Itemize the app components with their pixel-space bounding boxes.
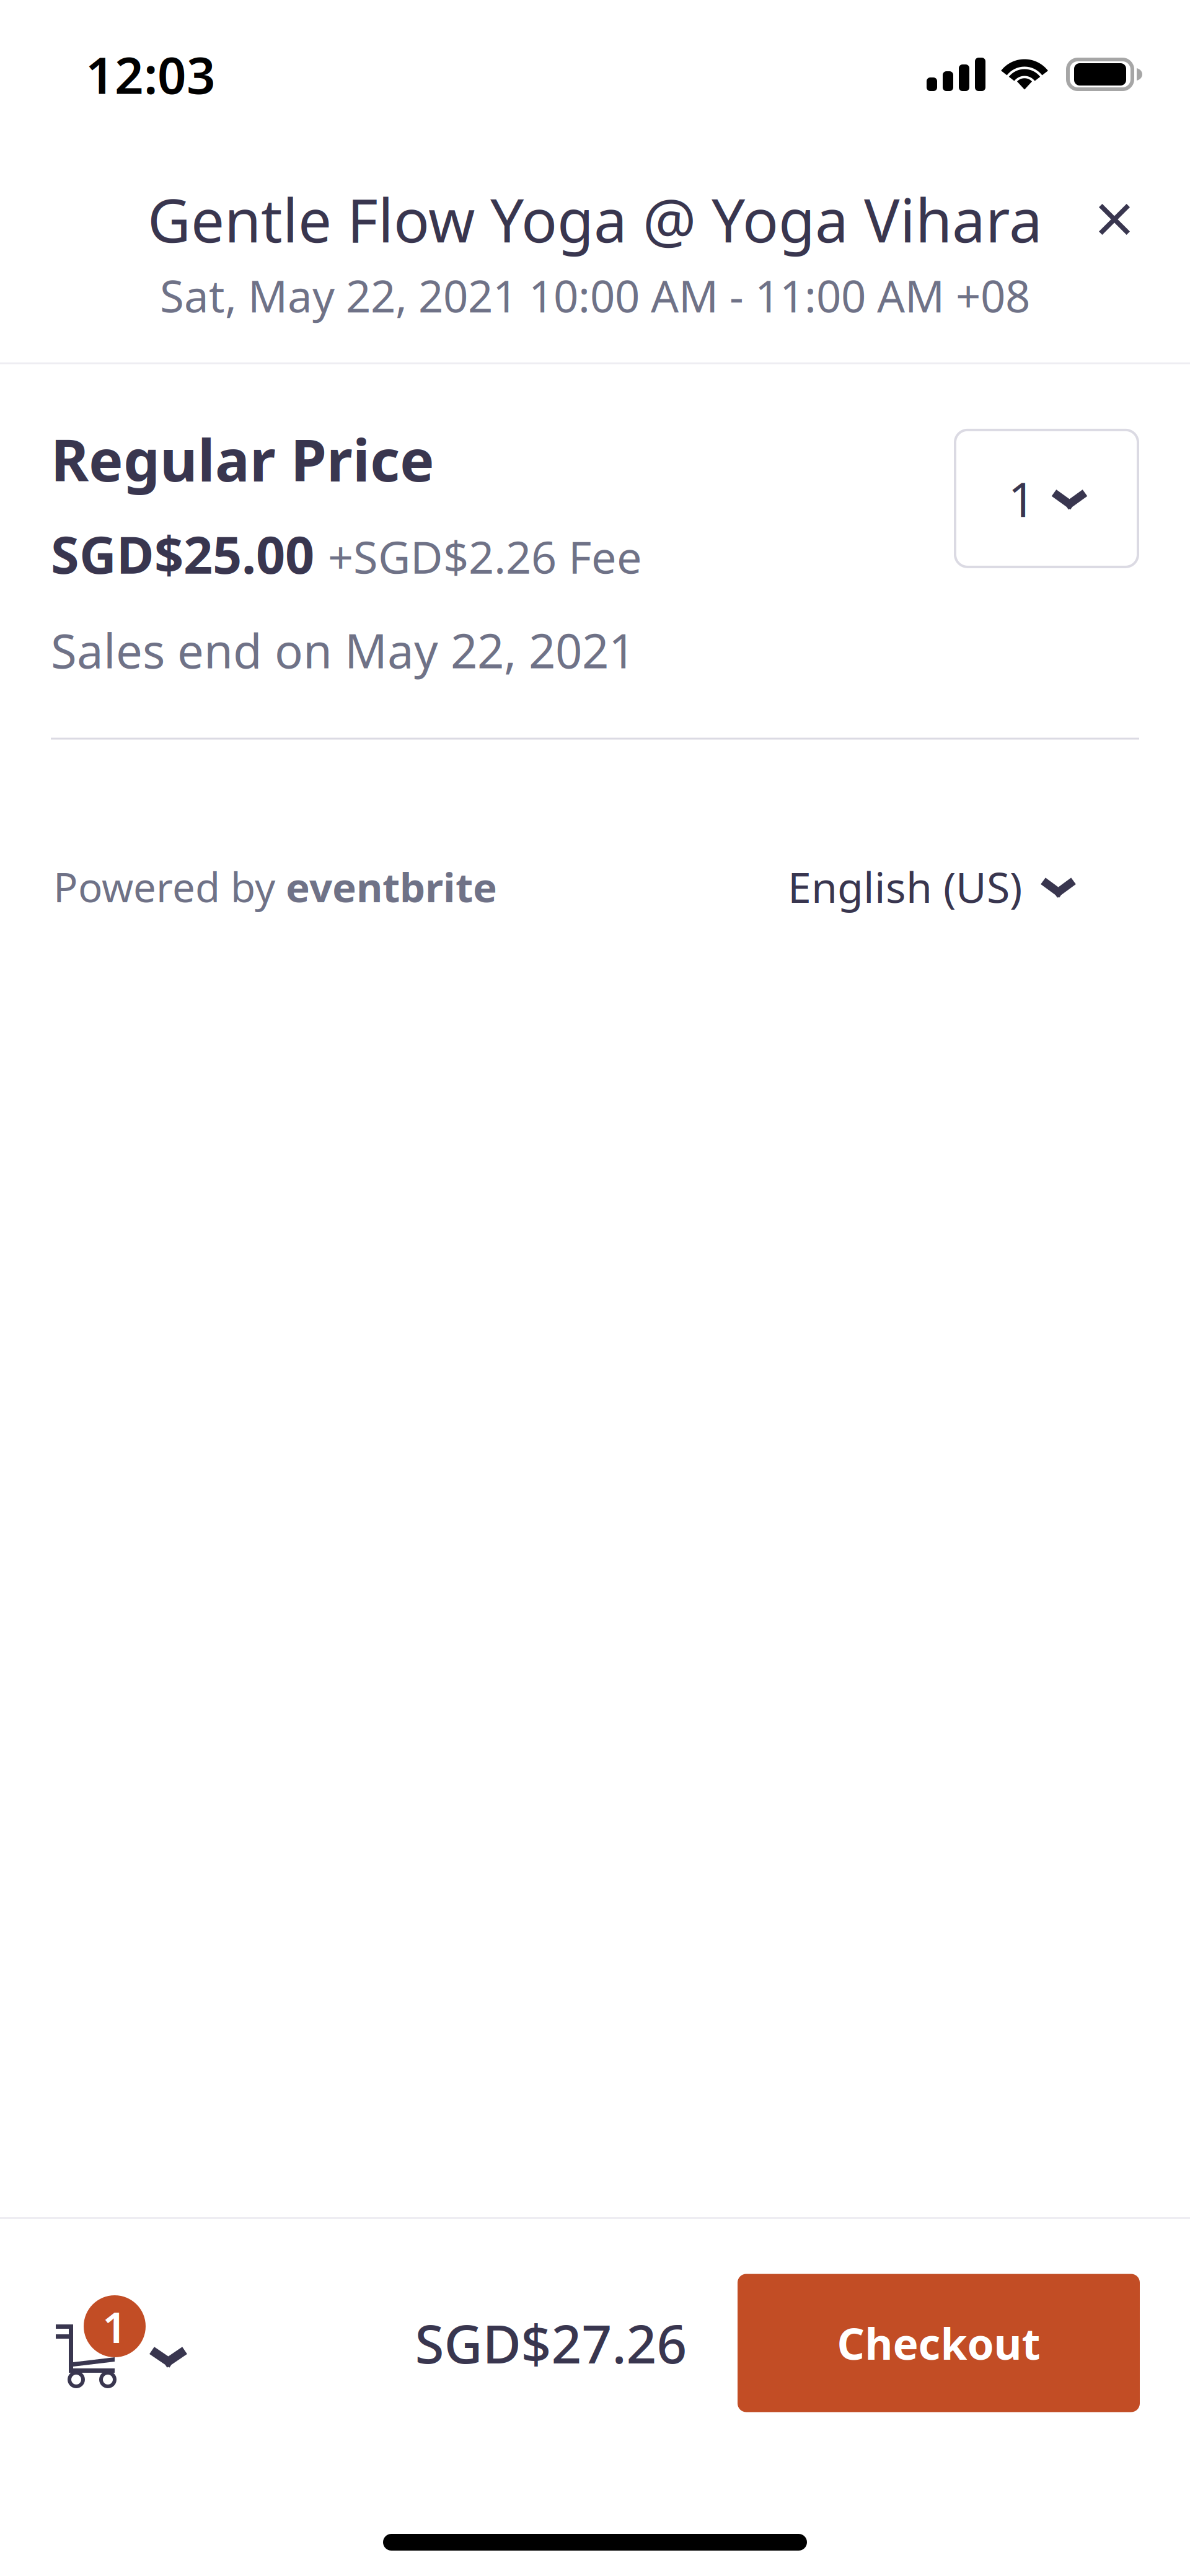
staticText: 1	[1008, 467, 1035, 530]
staticText: Sat, May 22, 2021 10:00 AM - 11:00 AM +0…	[160, 266, 1030, 325]
button[interactable]: Close	[1076, 181, 1153, 258]
button[interactable]: Cart, 1 item	[56, 2267, 185, 2419]
staticText: 12:03	[86, 41, 216, 108]
staticText: English (US)	[788, 859, 1022, 915]
button[interactable]: English (US)	[788, 859, 1073, 915]
button[interactable]: Checkout	[738, 2274, 1140, 2412]
staticText: 1	[102, 2298, 127, 2355]
button[interactable]: Quantity, 1	[955, 421, 1138, 567]
staticText: Powered by	[53, 860, 286, 913]
staticText: Regular Price	[51, 421, 434, 497]
staticText: Checkout	[837, 2314, 1040, 2372]
staticText: Gentle Flow Yoga @ Yoga Vihara	[148, 180, 1042, 259]
staticText: Sales end on May 22, 2021	[51, 619, 635, 681]
staticText: SGD$27.26	[415, 2308, 687, 2378]
staticText: eventbrite	[286, 860, 497, 913]
staticText: +SGD$2.26 Fee	[328, 527, 642, 586]
staticText: SGD$25.00	[51, 520, 314, 588]
